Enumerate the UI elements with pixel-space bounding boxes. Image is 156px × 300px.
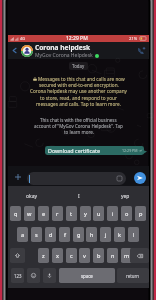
- staticText: e: [42, 210, 46, 218]
- staticText: I: [78, 193, 80, 200]
- staticText: to store, read, and respond to your: [40, 95, 117, 101]
- button[interactable]: h: [86, 227, 97, 242]
- button[interactable]: yep: [102, 186, 149, 206]
- staticText: o: [125, 210, 129, 218]
- staticText: Today: [72, 63, 85, 69]
- staticText: 12:29 PM: [122, 148, 138, 153]
- button[interactable]: k: [114, 227, 125, 242]
- staticText: p: [139, 210, 143, 218]
- staticText: b: [97, 252, 101, 260]
- staticText: t: [70, 210, 73, 218]
- button[interactable]: Today: [72, 63, 85, 69]
- button[interactable]: g: [73, 227, 84, 242]
- staticText: g: [77, 231, 81, 239]
- staticText: okay: [26, 193, 38, 200]
- button[interactable]: Stickers: [27, 172, 126, 185]
- button[interactable]: z: [38, 248, 49, 263]
- staticText: s: [35, 231, 38, 239]
- button[interactable]: f: [59, 227, 70, 242]
- button[interactable]: e: [38, 206, 49, 221]
- staticText: secured with end-to-end encryption.: [39, 82, 119, 88]
- button[interactable]: I: [55, 186, 102, 206]
- button[interactable]: l: [128, 227, 139, 242]
- staticText: return: [126, 273, 140, 279]
- staticText: m: [124, 252, 130, 260]
- button[interactable]: Back: [8, 42, 20, 59]
- button[interactable]: q: [10, 206, 21, 221]
- button[interactable]: r: [52, 206, 63, 221]
- staticText: x: [56, 252, 59, 260]
- staticText: r: [56, 210, 59, 218]
- staticText: 123: [14, 273, 22, 279]
- button[interactable]: return: [117, 268, 149, 283]
- button[interactable]: s: [31, 227, 42, 242]
- other: Stickers: [117, 176, 122, 181]
- staticText: c: [70, 252, 73, 260]
- staticText: v: [83, 252, 86, 260]
- button[interactable]: Download certificate: [45, 146, 144, 155]
- staticText: f: [64, 231, 66, 239]
- staticText: j: [105, 231, 107, 239]
- button[interactable]: m: [121, 248, 132, 263]
- button[interactable]: u: [93, 206, 104, 221]
- staticText: i: [112, 210, 114, 218]
- staticText: 21%: [129, 36, 138, 42]
- staticText: Corona helpdesk may use another company: [30, 88, 127, 94]
- staticText: Download certificate: [48, 147, 101, 154]
- button[interactable]: t: [66, 206, 77, 221]
- button[interactable]: Attach: [13, 172, 22, 181]
- staticText: Corona helpdesk: [35, 43, 91, 52]
- button[interactable]: 123: [11, 268, 24, 283]
- button[interactable]: v: [79, 248, 90, 263]
- button[interactable]: d: [45, 227, 56, 242]
- staticText: This chat is with the official business: [40, 117, 117, 123]
- staticText: yep: [121, 193, 130, 200]
- staticText: messages and calls. Tap to learn more.: [36, 101, 121, 107]
- staticText: Messages to this chat and calls are now: [38, 76, 125, 82]
- button[interactable]: Add call: [133, 42, 149, 59]
- button[interactable]: n: [107, 248, 118, 263]
- staticText: h: [90, 231, 94, 239]
- staticText: z: [42, 252, 45, 260]
- staticText: to learn more.: [64, 129, 94, 135]
- staticText: a: [21, 231, 25, 239]
- staticText: y: [84, 210, 87, 218]
- button[interactable]: j: [100, 227, 111, 242]
- staticText: w: [27, 210, 32, 218]
- staticText: l: [133, 231, 135, 239]
- button[interactable]: Send: [134, 172, 146, 184]
- button[interactable]: c: [66, 248, 77, 263]
- staticText: space: [81, 273, 93, 279]
- button[interactable]: Emoji: [27, 268, 40, 283]
- button[interactable]: p: [135, 206, 146, 221]
- button[interactable]: Backspace: [130, 248, 149, 263]
- staticText: q: [14, 210, 18, 218]
- staticText: n: [111, 252, 115, 260]
- button[interactable]: Shift: [10, 248, 25, 263]
- button[interactable]: space: [59, 268, 115, 283]
- staticText: u: [97, 210, 101, 218]
- staticText: d: [49, 231, 53, 239]
- staticText: MyGov Corona Helpdesk: [35, 52, 93, 59]
- button[interactable]: Voice input: [43, 268, 56, 283]
- staticText: account of "MyGov Corona Helpdesk". Tap: [34, 123, 123, 129]
- button[interactable]: b: [93, 248, 104, 263]
- button[interactable]: x: [52, 248, 63, 263]
- staticText: k: [118, 231, 121, 239]
- button[interactable]: i: [107, 206, 118, 221]
- button[interactable]: o: [121, 206, 132, 221]
- button[interactable]: w: [24, 206, 35, 221]
- staticText: 12:29 PM: [66, 35, 88, 42]
- staticText: 4G: [20, 36, 26, 41]
- button[interactable]: a: [17, 227, 28, 242]
- button[interactable]: okay: [8, 186, 55, 206]
- button[interactable]: y: [80, 206, 91, 221]
